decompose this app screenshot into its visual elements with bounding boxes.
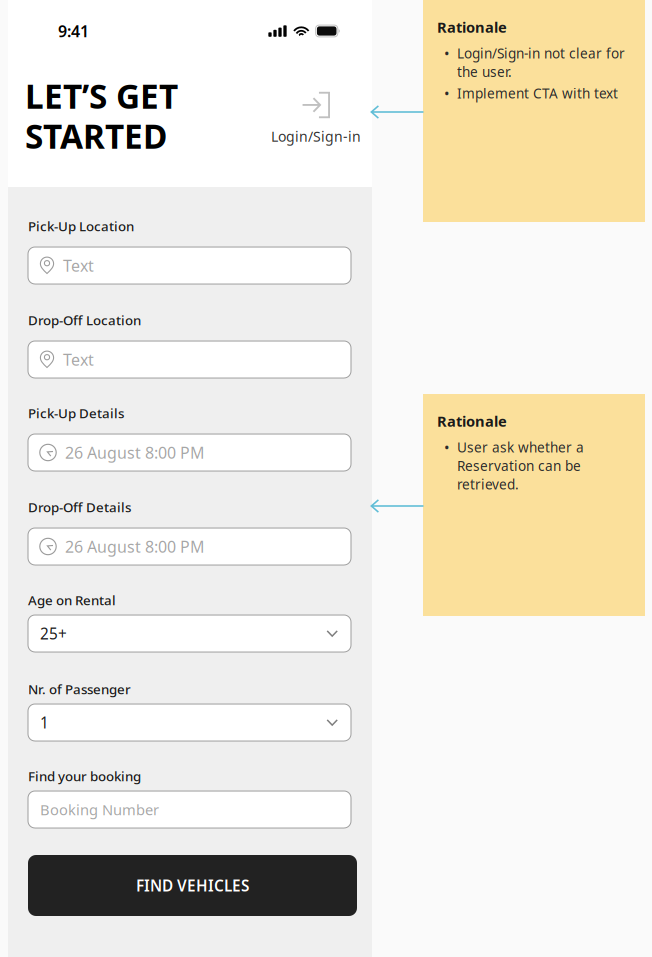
- staticText: Nr. of Passenger: [28, 680, 131, 698]
- staticText: 26 August 8:00 PM: [65, 536, 205, 557]
- staticText: Rationale: [437, 17, 507, 37]
- button[interactable]: Text: [28, 341, 351, 378]
- button[interactable]: Booking Number: [28, 791, 351, 828]
- staticText: Booking Number: [40, 799, 159, 819]
- staticText: 25+: [40, 623, 67, 644]
- staticText: Drop-Off Details: [28, 498, 131, 516]
- staticText: Pick-Up Details: [28, 404, 124, 422]
- staticText: •: [444, 84, 450, 104]
- staticText: Age on Rental: [28, 591, 116, 609]
- button[interactable]: Login/Sign-in: [266, 91, 366, 144]
- button[interactable]: 25+: [28, 615, 351, 652]
- staticText: 9:41: [58, 20, 89, 42]
- staticText: Find your booking: [28, 767, 141, 785]
- staticText: •: [444, 437, 450, 457]
- button[interactable]: Text: [28, 247, 351, 284]
- staticText: LET’S GET: [25, 73, 178, 118]
- staticText: Login/Sign-in: [271, 127, 361, 146]
- staticText: Login/Sign-in not clear for the user.: [457, 44, 625, 81]
- button[interactable]: 26 August 8:00 PM: [28, 434, 351, 471]
- staticText: User ask whether a Reservation can be re…: [457, 438, 584, 494]
- staticText: Pick-Up Location: [28, 217, 134, 235]
- staticText: Rationale: [437, 411, 507, 431]
- button[interactable]: 1: [28, 704, 351, 741]
- staticText: 1: [40, 712, 49, 733]
- staticText: Drop-Off Location: [28, 311, 141, 329]
- staticText: FIND VEHICLES: [136, 875, 249, 896]
- staticText: •: [444, 43, 450, 63]
- staticText: Text: [63, 255, 94, 276]
- button[interactable]: FIND VEHICLES: [28, 855, 357, 916]
- staticText: STARTED: [25, 113, 167, 158]
- button[interactable]: 26 August 8:00 PM: [28, 528, 351, 565]
- staticText: Implement CTA with text: [457, 84, 618, 102]
- staticText: Text: [63, 349, 94, 370]
- staticText: 26 August 8:00 PM: [65, 442, 205, 463]
